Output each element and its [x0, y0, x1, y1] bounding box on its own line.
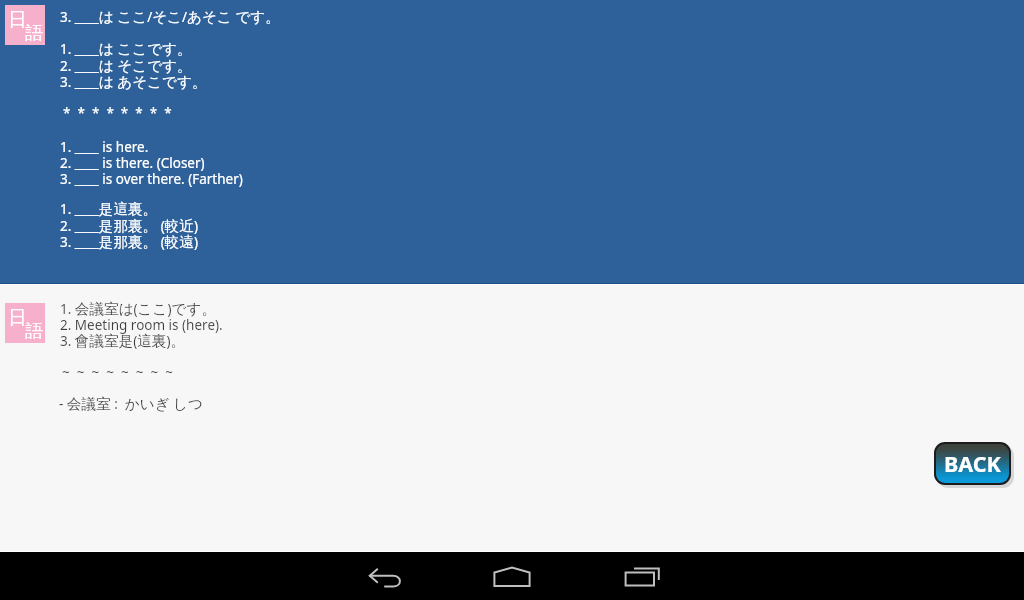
- staticText: 1. ____是這裏。: [60, 200, 158, 219]
- button[interactable]: Lesson sentence pattern: [0, 0, 1024, 283]
- button[interactable]: Home: [468, 551, 556, 597]
- staticText: 語: [25, 22, 43, 45]
- staticText: 1. 会議室は(ここ)です。: [60, 300, 217, 319]
- staticText: 日: [8, 8, 27, 32]
- button[interactable]: Recent apps: [598, 550, 686, 596]
- staticText: 1. ____は ここです。: [60, 40, 192, 59]
- staticText: 3. 會議室是(這裏)。: [60, 332, 186, 351]
- staticText: 2. ____是那裏。 (較近): [60, 217, 198, 236]
- staticText: 2. ____は そこです。: [60, 57, 192, 76]
- staticText: 1. ____ is here.: [60, 138, 149, 156]
- staticText: ~ ~ ~ ~ ~ ~ ~ ~: [62, 363, 173, 381]
- staticText: - 会議室 : かいぎ しつ: [59, 395, 203, 414]
- staticText: 3. ____は あそこです。: [60, 73, 207, 92]
- staticText: 日: [8, 306, 27, 330]
- button[interactable]: Back: [342, 555, 430, 600]
- staticText: 2. Meeting room is (here).: [60, 316, 223, 334]
- staticText: 2. ____ is there. (Closer): [60, 154, 205, 172]
- staticText: 3. ____是那裏。 (較遠): [60, 233, 198, 252]
- staticText: * * * * * * * *: [63, 104, 172, 122]
- staticText: BACK: [944, 449, 1001, 478]
- staticText: 語: [25, 320, 43, 343]
- button[interactable]: Example sentence: [0, 285, 1024, 551]
- staticText: 3. ____は ここ/そこ/あそこ です。: [60, 8, 280, 27]
- button[interactable]: BACK: [934, 442, 1011, 485]
- staticText: 3. ____ is over there. (Farther): [60, 170, 243, 188]
